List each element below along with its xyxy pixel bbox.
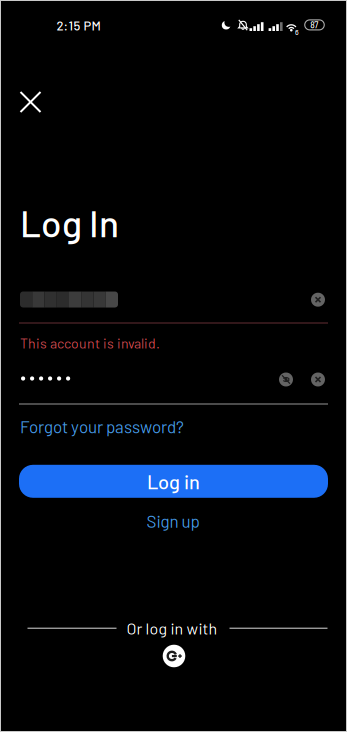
staticText: 87 — [310, 20, 318, 30]
staticText: Log in — [147, 469, 200, 493]
staticText: Or log in with — [126, 618, 217, 638]
button[interactable]: Sign up — [146, 511, 199, 531]
staticText: 6 — [295, 28, 299, 36]
button[interactable] — [311, 293, 325, 307]
button[interactable]: Forgot your password? — [20, 416, 184, 437]
button[interactable] — [19, 91, 41, 113]
staticText: Forgot your password? — [20, 416, 184, 437]
staticText: 2:15 PM — [56, 17, 100, 33]
button[interactable] — [162, 644, 186, 668]
staticText: Sign up — [146, 511, 199, 531]
button[interactable] — [279, 372, 293, 386]
button[interactable] — [311, 372, 325, 386]
button[interactable]: Log in — [19, 465, 328, 498]
staticText: Log In — [20, 200, 119, 245]
staticText: This account is invalid. — [20, 334, 160, 351]
